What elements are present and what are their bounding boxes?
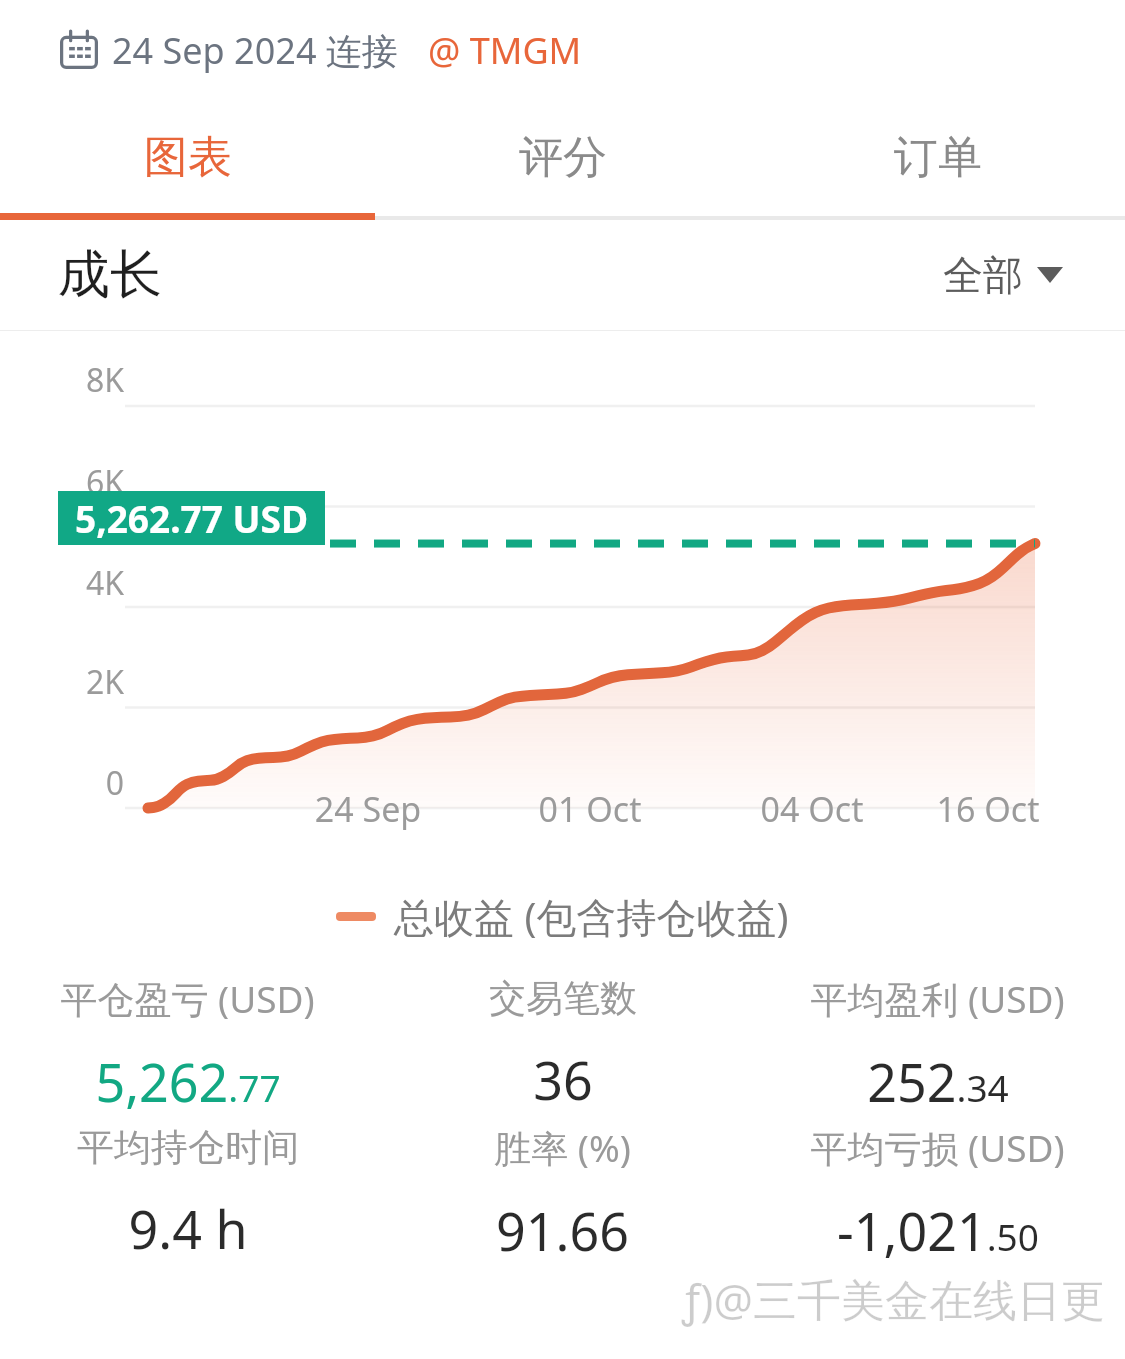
staticText: 成长 (58, 242, 162, 308)
button[interactable]: 平均盈利 (USD) (750, 971, 1125, 1119)
staticText: 5,262.77 (95, 1046, 281, 1117)
staticText: 交易笔数 (489, 975, 637, 1022)
button[interactable]: 图表 (0, 100, 375, 215)
staticText: 16 Oct (898, 786, 1078, 832)
staticText: 平均盈利 (USD) (810, 973, 1065, 1024)
staticText: 平均亏损 (USD) (810, 1122, 1065, 1173)
button[interactable]: 平均持仓时间 (0, 1119, 375, 1269)
staticText: 8K (78, 358, 124, 402)
other: Calendar (60, 31, 98, 69)
staticText: 04 Oct (722, 786, 902, 832)
button[interactable]: 总收益 (包含持仓收益) (336, 889, 789, 944)
staticText: 0 (78, 761, 124, 805)
button[interactable]: 交易笔数 (375, 971, 750, 1119)
staticText: 36 (533, 1044, 593, 1115)
button[interactable]: 全部 (937, 242, 1069, 308)
staticText: 4K (78, 561, 124, 605)
button[interactable]: 平均亏损 (USD) (750, 1119, 1125, 1269)
staticText: 9.4 h (128, 1193, 248, 1264)
staticText: 91.66 (496, 1195, 629, 1266)
staticText: 平仓盈亏 (USD) (60, 973, 315, 1024)
staticText: 252.34 (867, 1046, 1009, 1117)
staticText: 平均持仓时间 (77, 1124, 299, 1171)
staticText: 5,262.77 USD (75, 493, 308, 543)
staticText: 评分 (519, 130, 607, 185)
staticText: 2K (78, 660, 124, 704)
staticText: 01 Oct (500, 786, 680, 832)
staticText: 6K (78, 460, 124, 504)
button[interactable]: 评分 (375, 100, 750, 215)
staticText: @ TMGM (428, 26, 582, 75)
button[interactable]: 平仓盈亏 (USD) (0, 971, 375, 1119)
staticText: ƒ)@三千美金在线日更 (682, 1269, 1105, 1329)
button[interactable]: 订单 (750, 100, 1125, 215)
button[interactable]: 胜率 (%) (375, 1119, 750, 1269)
staticText: 24 Sep (278, 786, 458, 832)
staticText: 24 Sep 2024 连接 (112, 26, 398, 75)
staticText: 订单 (894, 130, 982, 185)
staticText: 图表 (144, 130, 232, 185)
staticText: -1,021.50 (837, 1195, 1039, 1266)
staticText: 全部 (943, 250, 1023, 300)
staticText: 胜率 (%) (494, 1122, 631, 1173)
button[interactable]: @ TMGM (424, 20, 586, 81)
staticText: 总收益 (包含持仓收益) (394, 889, 789, 944)
